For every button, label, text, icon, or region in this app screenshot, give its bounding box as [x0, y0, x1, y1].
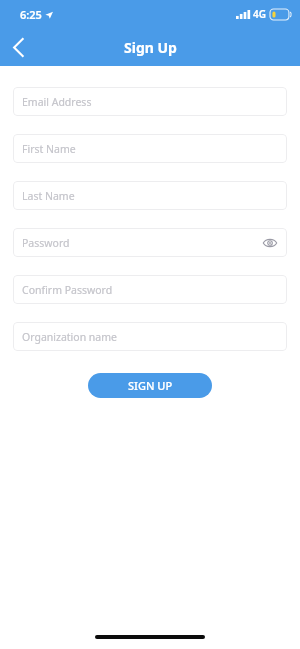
- button[interactable]: Back: [0, 29, 36, 65]
- staticText: Confirm Password: [22, 283, 113, 297]
- button[interactable]: Organization name: [13, 322, 287, 351]
- button[interactable]: Last Name: [13, 181, 287, 210]
- staticText: 4G: [253, 7, 266, 21]
- staticText: First Name: [22, 142, 76, 156]
- staticText: Last Name: [22, 189, 75, 203]
- button[interactable]: Email Address: [13, 87, 287, 116]
- staticText: Organization name: [22, 330, 117, 344]
- button[interactable]: SIGN UP: [88, 373, 212, 398]
- staticText: 6:25: [20, 7, 42, 22]
- button[interactable]: Show password: [261, 234, 279, 252]
- staticText: Sign Up: [124, 38, 177, 57]
- button[interactable]: Confirm Password: [13, 275, 287, 304]
- button[interactable]: Password: [13, 228, 287, 257]
- staticText: Password: [22, 236, 70, 250]
- staticText: Email Address: [22, 95, 92, 109]
- staticText: SIGN UP: [128, 378, 173, 393]
- button[interactable]: First Name: [13, 134, 287, 163]
